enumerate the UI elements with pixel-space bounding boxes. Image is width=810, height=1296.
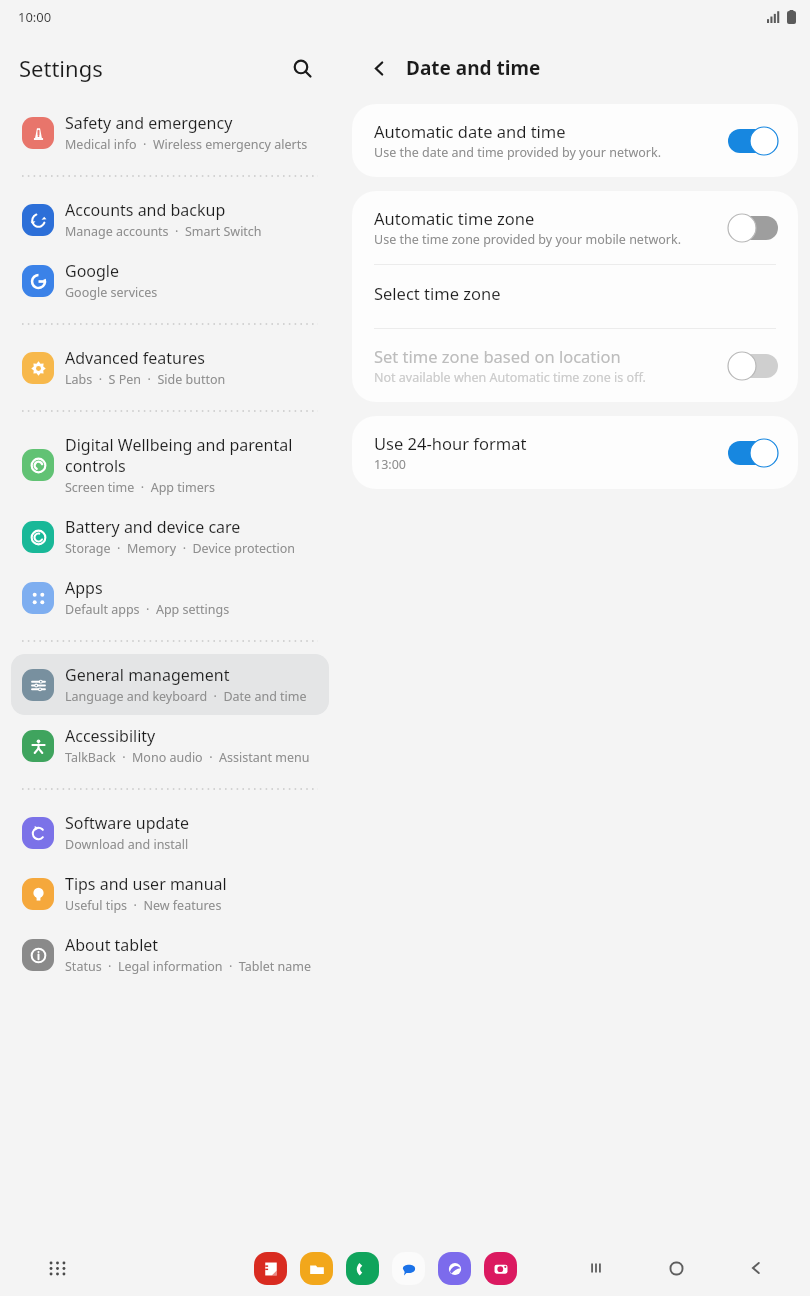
staticText: Set time zone based on location [374,345,621,367]
staticText: Date and time [406,55,541,81]
staticText: Use 24-hour format [374,432,527,454]
staticText: Medical info · Wireless emergency alerts [65,136,308,153]
staticText: Apps [65,577,103,599]
button[interactable]: About tablet [0,924,340,985]
staticText: 10:00 [18,8,52,26]
button[interactable]: Back [740,1252,772,1284]
button[interactable]: Tips and user manual [0,863,340,924]
button[interactable]: Software update [0,802,340,863]
staticText: Battery and device care [65,516,241,538]
button[interactable]: Safety and emergency [0,102,340,163]
staticText: Useful tips · New features [65,897,222,914]
staticText: Accessibility [65,725,156,747]
staticText: TalkBack · Mono audio · Assistant menu [65,749,310,766]
staticText: Labs · S Pen · Side button [65,371,226,388]
button[interactable]: browser [438,1252,471,1285]
staticText: Accounts and backup [65,199,226,221]
button[interactable]: Back [362,51,396,85]
button[interactable]: note [254,1252,287,1285]
button[interactable]: Accounts and backup [0,189,340,250]
staticText: General management [65,664,230,686]
staticText: Settings [19,53,103,83]
staticText: Status · Legal information · Tablet name [65,958,311,975]
button[interactable]: Advanced features [0,337,340,398]
staticText: Digital Wellbeing and parental controls [65,434,328,477]
button[interactable]: General management [11,654,329,715]
staticText: Select time zone [374,282,501,304]
staticText: Automatic time zone [374,207,535,229]
button[interactable]: On [728,439,778,467]
button[interactable]: Off [728,214,778,242]
button[interactable]: Home [660,1252,692,1284]
button[interactable]: phone [346,1252,379,1285]
button[interactable]: msg [392,1252,425,1285]
button[interactable]: Apps [0,567,340,628]
button[interactable]: Battery and device care [0,506,340,567]
staticText: Safety and emergency [65,112,233,134]
staticText: About tablet [65,934,159,956]
staticText: Automatic date and time [374,120,566,142]
button[interactable]: Automatic time zone [352,191,798,264]
button[interactable]: Select time zone [352,265,798,328]
staticText: Default apps · App settings [65,601,230,618]
button[interactable]: Set time zone based on location [352,329,798,402]
button[interactable]: Google [0,250,340,311]
staticText: Software update [65,812,190,834]
staticText: Language and keyboard · Date and time [65,688,307,705]
staticText: Storage · Memory · Device protection [65,540,296,557]
staticText: Use the date and time provided by your n… [374,144,662,161]
staticText: Use the time zone provided by your mobil… [374,231,682,248]
staticText: Google services [65,284,158,301]
staticText: Google [65,260,120,282]
button[interactable]: Use 24-hour format [352,416,798,489]
staticText: Screen time · App timers [65,479,215,496]
button[interactable]: Digital Wellbeing and parental controls [0,424,340,506]
staticText: Advanced features [65,347,205,369]
button[interactable]: files [300,1252,333,1285]
button[interactable]: Recents [580,1252,612,1284]
button[interactable]: On [728,127,778,155]
button[interactable]: Automatic date and time [352,104,798,177]
button[interactable]: Search [282,48,322,88]
staticText: Manage accounts · Smart Switch [65,223,262,240]
staticText: 13:00 [374,456,406,473]
button[interactable]: Accessibility [0,715,340,776]
staticText: Tips and user manual [65,873,227,895]
staticText: Download and install [65,836,189,853]
button[interactable]: Off [728,352,778,380]
button[interactable]: All apps [40,1251,74,1285]
button[interactable]: camera [484,1252,517,1285]
staticText: Not available when Automatic time zone i… [374,369,646,386]
